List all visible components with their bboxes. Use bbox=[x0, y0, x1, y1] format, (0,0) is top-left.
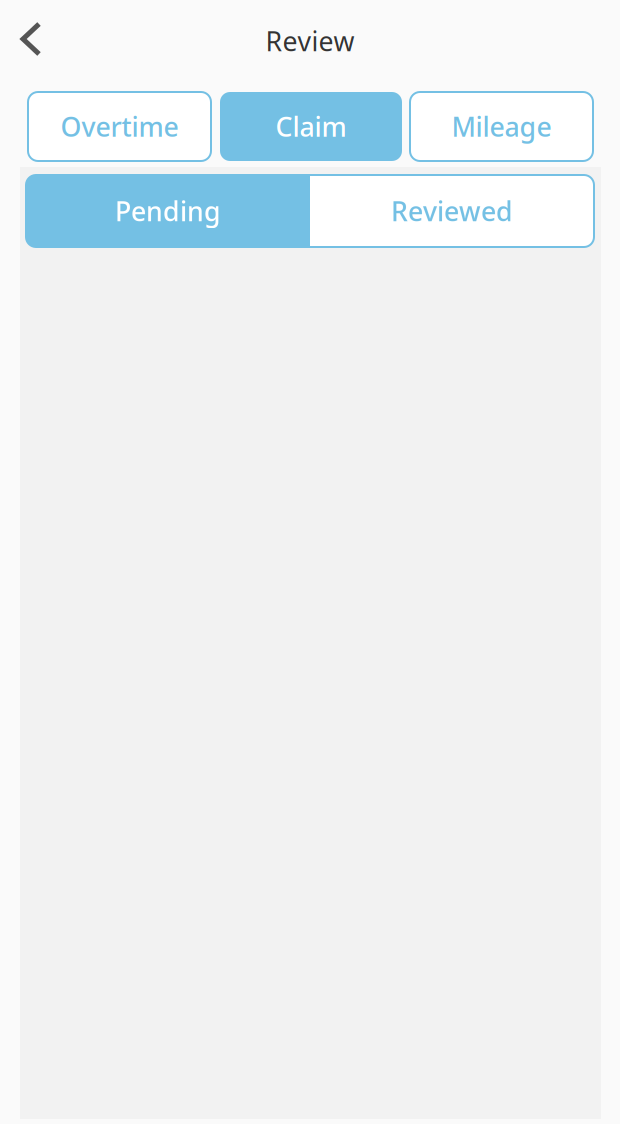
staticText: Mileage bbox=[451, 109, 551, 144]
button[interactable]: Reviewed bbox=[310, 175, 594, 247]
button[interactable]: Overtime bbox=[28, 92, 211, 161]
staticText: Overtime bbox=[60, 109, 178, 144]
button[interactable]: Pending bbox=[26, 175, 310, 247]
staticText: Review bbox=[265, 23, 354, 59]
button[interactable]: Claim bbox=[220, 92, 402, 161]
staticText: Pending bbox=[115, 193, 221, 229]
staticText: Reviewed bbox=[391, 193, 513, 229]
button[interactable]: Mileage bbox=[410, 92, 593, 161]
button[interactable]: Back bbox=[9, 16, 53, 62]
staticText: Claim bbox=[275, 109, 346, 144]
